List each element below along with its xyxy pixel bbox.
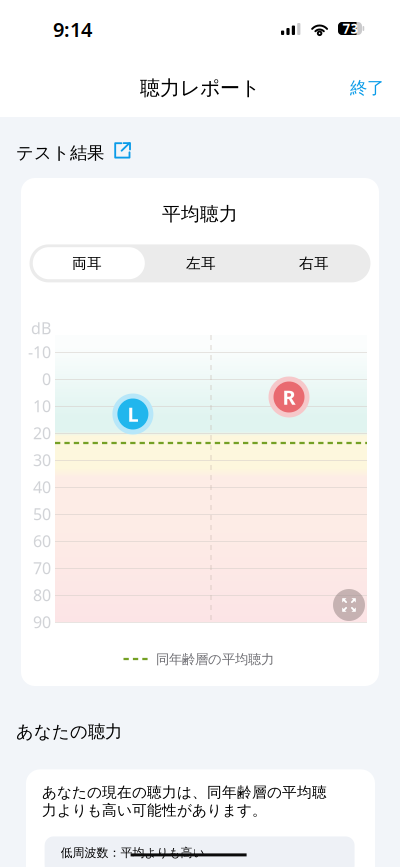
staticText: 30	[33, 449, 51, 471]
button[interactable]: 拡大	[333, 589, 365, 621]
staticText: 40	[33, 476, 51, 498]
staticText: 右耳	[299, 254, 329, 272]
staticText: 左耳	[186, 254, 216, 272]
button[interactable]: 両耳	[29, 244, 144, 282]
button[interactable]: 左耳	[144, 244, 257, 282]
staticText: 0	[42, 368, 51, 390]
staticText: 70	[33, 557, 51, 579]
staticText: 同年齢層の平均聴力	[156, 651, 274, 667]
staticText: 73	[342, 20, 358, 37]
staticText: -10	[28, 341, 51, 363]
button[interactable]: 共有	[114, 144, 131, 161]
staticText: 平均聴力	[162, 202, 238, 225]
staticText: 10	[33, 395, 51, 417]
staticText: 終了	[350, 77, 384, 99]
staticText: R	[282, 384, 295, 410]
staticText: 低周波数：平均よりも高い	[61, 845, 205, 860]
staticText: 聴力レポート	[140, 76, 260, 100]
button[interactable]: 右耳	[257, 244, 370, 282]
staticText: 90	[33, 611, 51, 633]
staticText: 両耳	[72, 254, 102, 272]
staticText: 20	[33, 422, 51, 444]
staticText: L	[127, 401, 138, 427]
staticText: 9:14	[53, 16, 92, 43]
staticText: 80	[33, 584, 51, 606]
staticText: 60	[33, 530, 51, 552]
button[interactable]: 終了	[335, 66, 399, 110]
staticText: あなたの聴力	[16, 721, 122, 742]
staticText: テスト結果	[16, 142, 104, 164]
staticText: 50	[33, 503, 51, 525]
staticText: dB	[31, 317, 51, 339]
staticText: あなたの現在の聴力は、同年齢層の平均聴力よりも高い可能性があります。	[42, 783, 327, 819]
